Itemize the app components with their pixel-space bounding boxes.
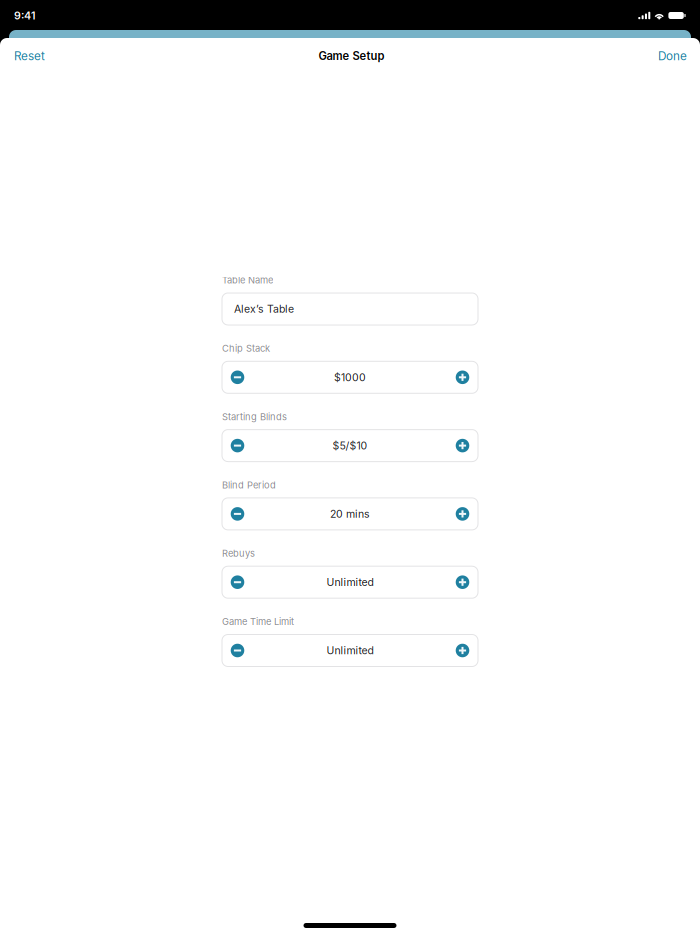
staticText: Chip Stack <box>222 343 270 354</box>
button[interactable]: Increase Chip Stack <box>447 361 478 393</box>
staticText: Starting Blinds <box>222 411 287 422</box>
button[interactable]: Decrease Starting Blinds <box>222 430 253 462</box>
staticText: Done <box>658 49 687 63</box>
staticText: Game Time Limit <box>222 616 294 627</box>
staticText: Alex’s Table <box>234 303 294 315</box>
staticText: Blind Period <box>222 479 276 491</box>
staticText: Unlimited <box>326 644 373 657</box>
staticText: Reset <box>14 49 45 63</box>
button[interactable]: Decrease Rebuys <box>222 566 253 598</box>
button[interactable]: Decrease Chip Stack <box>222 361 253 393</box>
staticText: $1000 <box>334 371 366 384</box>
button[interactable]: Reset <box>0 38 55 74</box>
staticText: 20 mins <box>330 507 370 520</box>
button[interactable]: Increase Starting Blinds <box>447 430 478 462</box>
staticText: 9:41 <box>14 9 36 22</box>
staticText: $5/$10 <box>332 439 367 452</box>
staticText: Table Name <box>222 274 273 286</box>
button[interactable]: Increase Game Time Limit <box>447 634 478 666</box>
staticText: Unlimited <box>326 576 373 588</box>
button[interactable]: Done <box>648 38 700 74</box>
button[interactable]: Increase Rebuys <box>447 566 478 598</box>
button[interactable]: Decrease Game Time Limit <box>222 634 253 666</box>
staticText: Game Setup <box>318 49 384 63</box>
staticText: Rebuys <box>222 548 255 559</box>
button[interactable]: Alex’s Table <box>222 293 478 325</box>
button[interactable]: Increase Blind Period <box>447 498 478 530</box>
button[interactable]: Decrease Blind Period <box>222 498 253 530</box>
